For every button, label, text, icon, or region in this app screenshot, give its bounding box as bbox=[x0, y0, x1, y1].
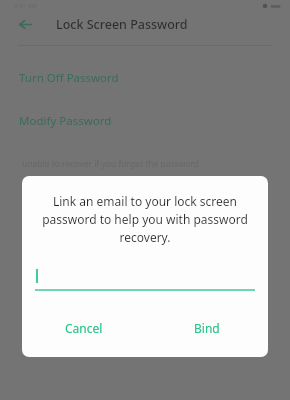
staticText: Cancel bbox=[65, 320, 103, 336]
staticText: Turn Off Password bbox=[19, 70, 119, 86]
staticText: unable to recover if you forget the pass… bbox=[22, 158, 200, 170]
staticText: Link an email to your lock screen passwo… bbox=[41, 193, 249, 246]
button[interactable]: Bind bbox=[145, 314, 268, 342]
button[interactable]: Turn Off Password bbox=[0, 67, 290, 89]
button[interactable]: Back bbox=[13, 12, 37, 36]
staticText: Lock Screen Password bbox=[56, 16, 188, 33]
staticText: Modify Password bbox=[19, 113, 112, 129]
button[interactable] bbox=[35, 265, 255, 291]
staticText: Bind bbox=[194, 320, 220, 336]
button[interactable]: Cancel bbox=[22, 314, 145, 342]
button[interactable]: Modify Password bbox=[0, 110, 290, 132]
